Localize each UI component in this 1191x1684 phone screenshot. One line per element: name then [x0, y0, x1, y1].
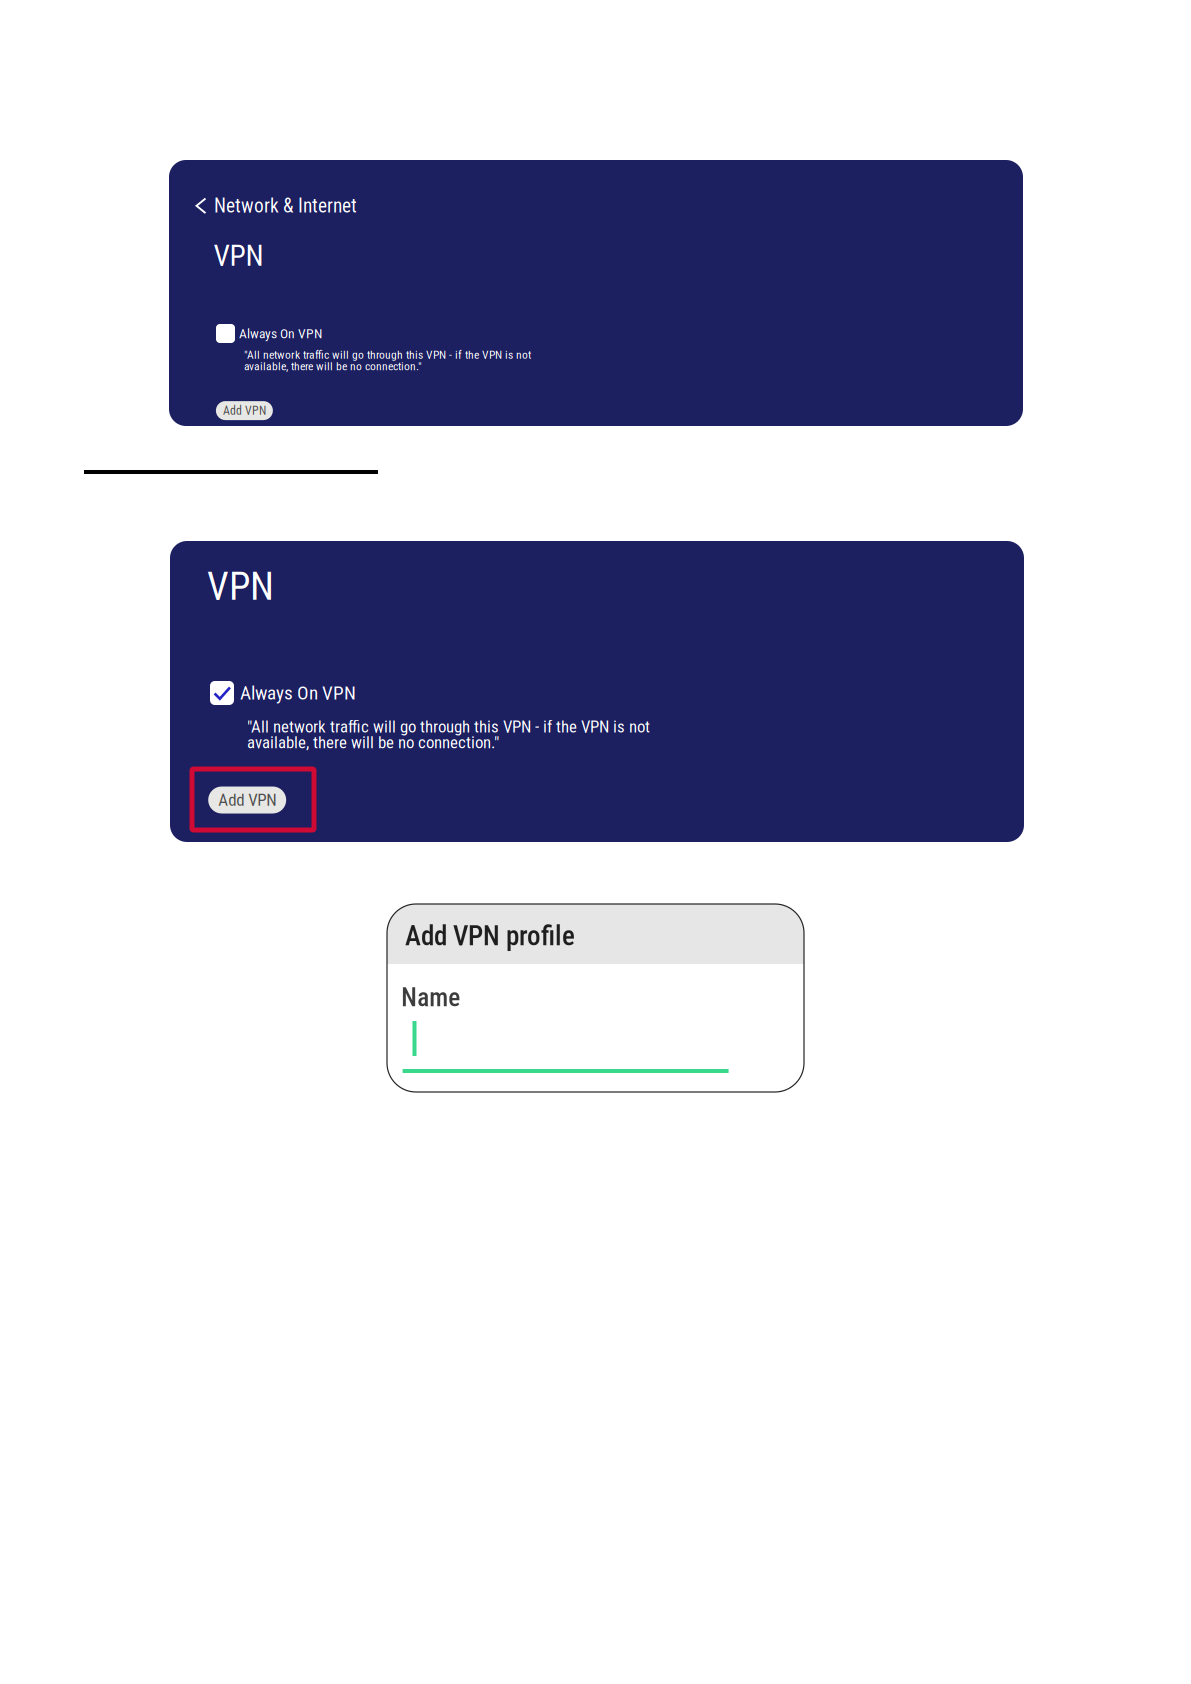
staticText: available, there will be no connection.": [244, 360, 422, 373]
staticText: Always On VPN: [239, 325, 322, 341]
staticText: Network & Internet: [214, 194, 357, 217]
button[interactable]: Add VPN: [216, 401, 273, 420]
staticText: Always On VPN: [240, 682, 356, 704]
button[interactable]: Back to Network & Internet: [196, 194, 366, 218]
staticText: VPN: [207, 564, 274, 609]
staticText: "All network traffic will go through thi…: [244, 348, 531, 362]
staticText: VPN: [214, 239, 264, 273]
staticText: Name: [401, 983, 460, 1012]
staticText: Add VPN profile: [405, 920, 575, 952]
button[interactable]: Add VPN: [190, 767, 316, 832]
staticText: available, there will be no connection.": [247, 733, 499, 752]
staticText: "All network traffic will go through thi…: [247, 717, 650, 737]
staticText: Add VPN: [218, 790, 276, 810]
staticText: Add VPN: [223, 404, 266, 417]
